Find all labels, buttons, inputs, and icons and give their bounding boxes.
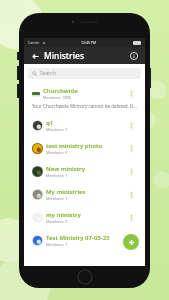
staticText: Test Ministry 07-03-23	[46, 234, 110, 242]
button[interactable]: Test Ministry 07-03-23	[28, 231, 141, 250]
button[interactable]: More options	[126, 212, 137, 223]
button[interactable]: test ministry photo	[28, 139, 141, 158]
staticText: Members: 1	[46, 127, 68, 132]
button[interactable]: More options	[126, 189, 137, 200]
button[interactable]: Back	[29, 50, 41, 62]
staticText: q1	[46, 119, 54, 127]
staticText: New ministry	[46, 165, 85, 173]
staticText: test ministry photo	[46, 142, 103, 150]
staticText: Carrier	[28, 40, 40, 45]
button[interactable]: Info	[128, 50, 140, 62]
button[interactable]: q1	[28, 116, 141, 135]
button[interactable]: My ministries	[28, 185, 141, 204]
staticText: My ministries	[46, 188, 86, 196]
button[interactable]: Add ministry	[123, 234, 139, 250]
staticText: Your Churchwide Ministry cannot be delet…	[32, 103, 137, 109]
button[interactable]: More options	[126, 120, 137, 131]
button[interactable]: More options	[126, 88, 137, 99]
staticText: my ministry	[46, 211, 81, 219]
button[interactable]: More options	[126, 143, 137, 154]
button[interactable]: More options	[126, 166, 137, 177]
button[interactable]: More options	[126, 235, 137, 246]
button[interactable]: Home	[77, 269, 93, 285]
staticText: Search	[40, 70, 56, 77]
staticText: Members: 2	[46, 219, 68, 224]
staticText: Members: 1	[46, 173, 68, 178]
button[interactable]: New ministry	[28, 162, 141, 181]
staticText: Ministries	[44, 50, 85, 62]
staticText: 12:45 PM	[81, 40, 97, 45]
staticText: Members: 0	[46, 150, 68, 155]
button[interactable]: Churchwide	[28, 84, 141, 112]
staticText: Members: 1	[46, 242, 68, 247]
button[interactable]: Search	[28, 68, 141, 79]
staticText: Members: 1	[46, 196, 68, 201]
staticText: Churchwide	[43, 87, 78, 95]
staticText: Members: 1008	[43, 95, 71, 100]
button[interactable]: my ministry	[28, 208, 141, 227]
